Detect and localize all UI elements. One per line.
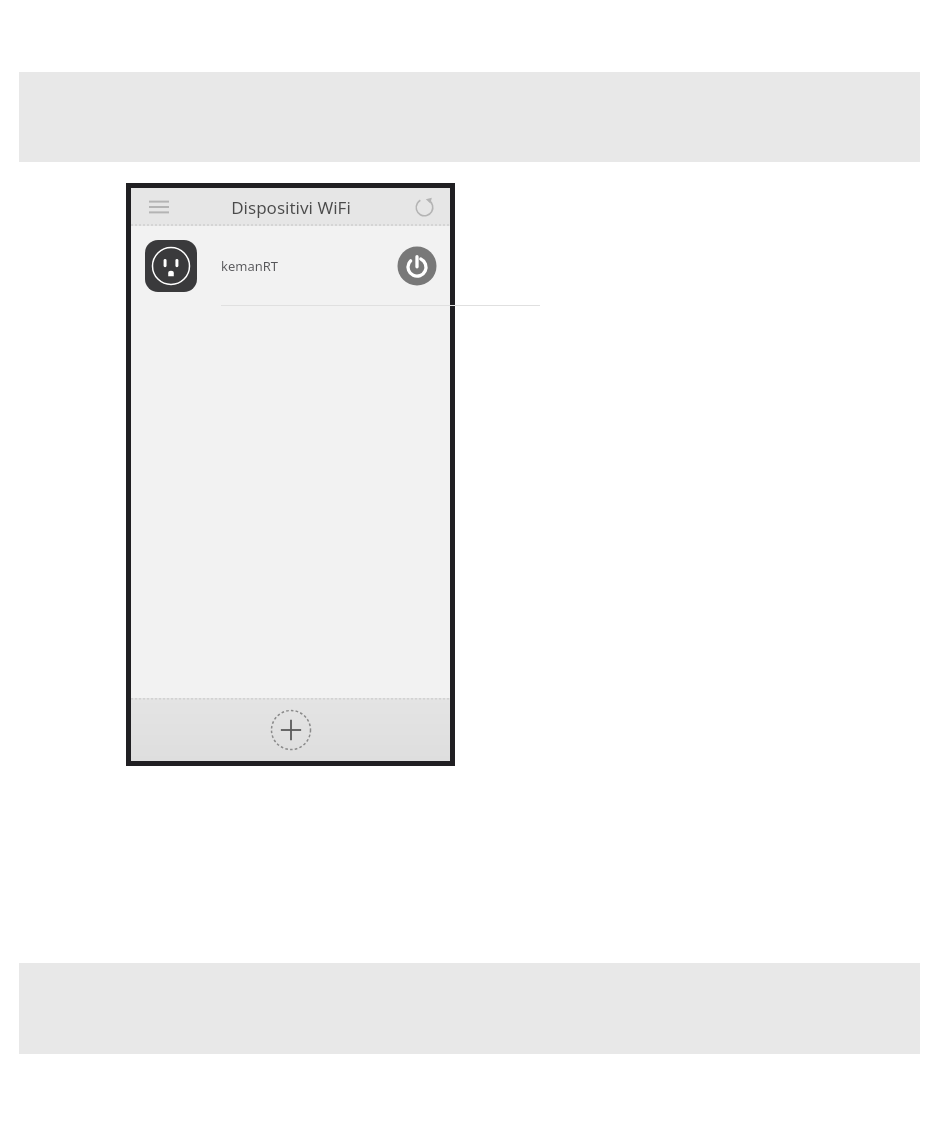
button[interactable]: Menu xyxy=(143,191,175,223)
staticText: Dispositivi WiFi xyxy=(231,196,351,219)
button[interactable]: Refresh xyxy=(408,191,440,223)
button[interactable]: Smart plug xyxy=(131,226,450,306)
button[interactable]: Add device xyxy=(268,707,314,753)
button[interactable]: Smart plug xyxy=(145,240,197,292)
staticText: kemanRT xyxy=(221,257,279,275)
button[interactable]: Power toggle xyxy=(395,244,439,288)
